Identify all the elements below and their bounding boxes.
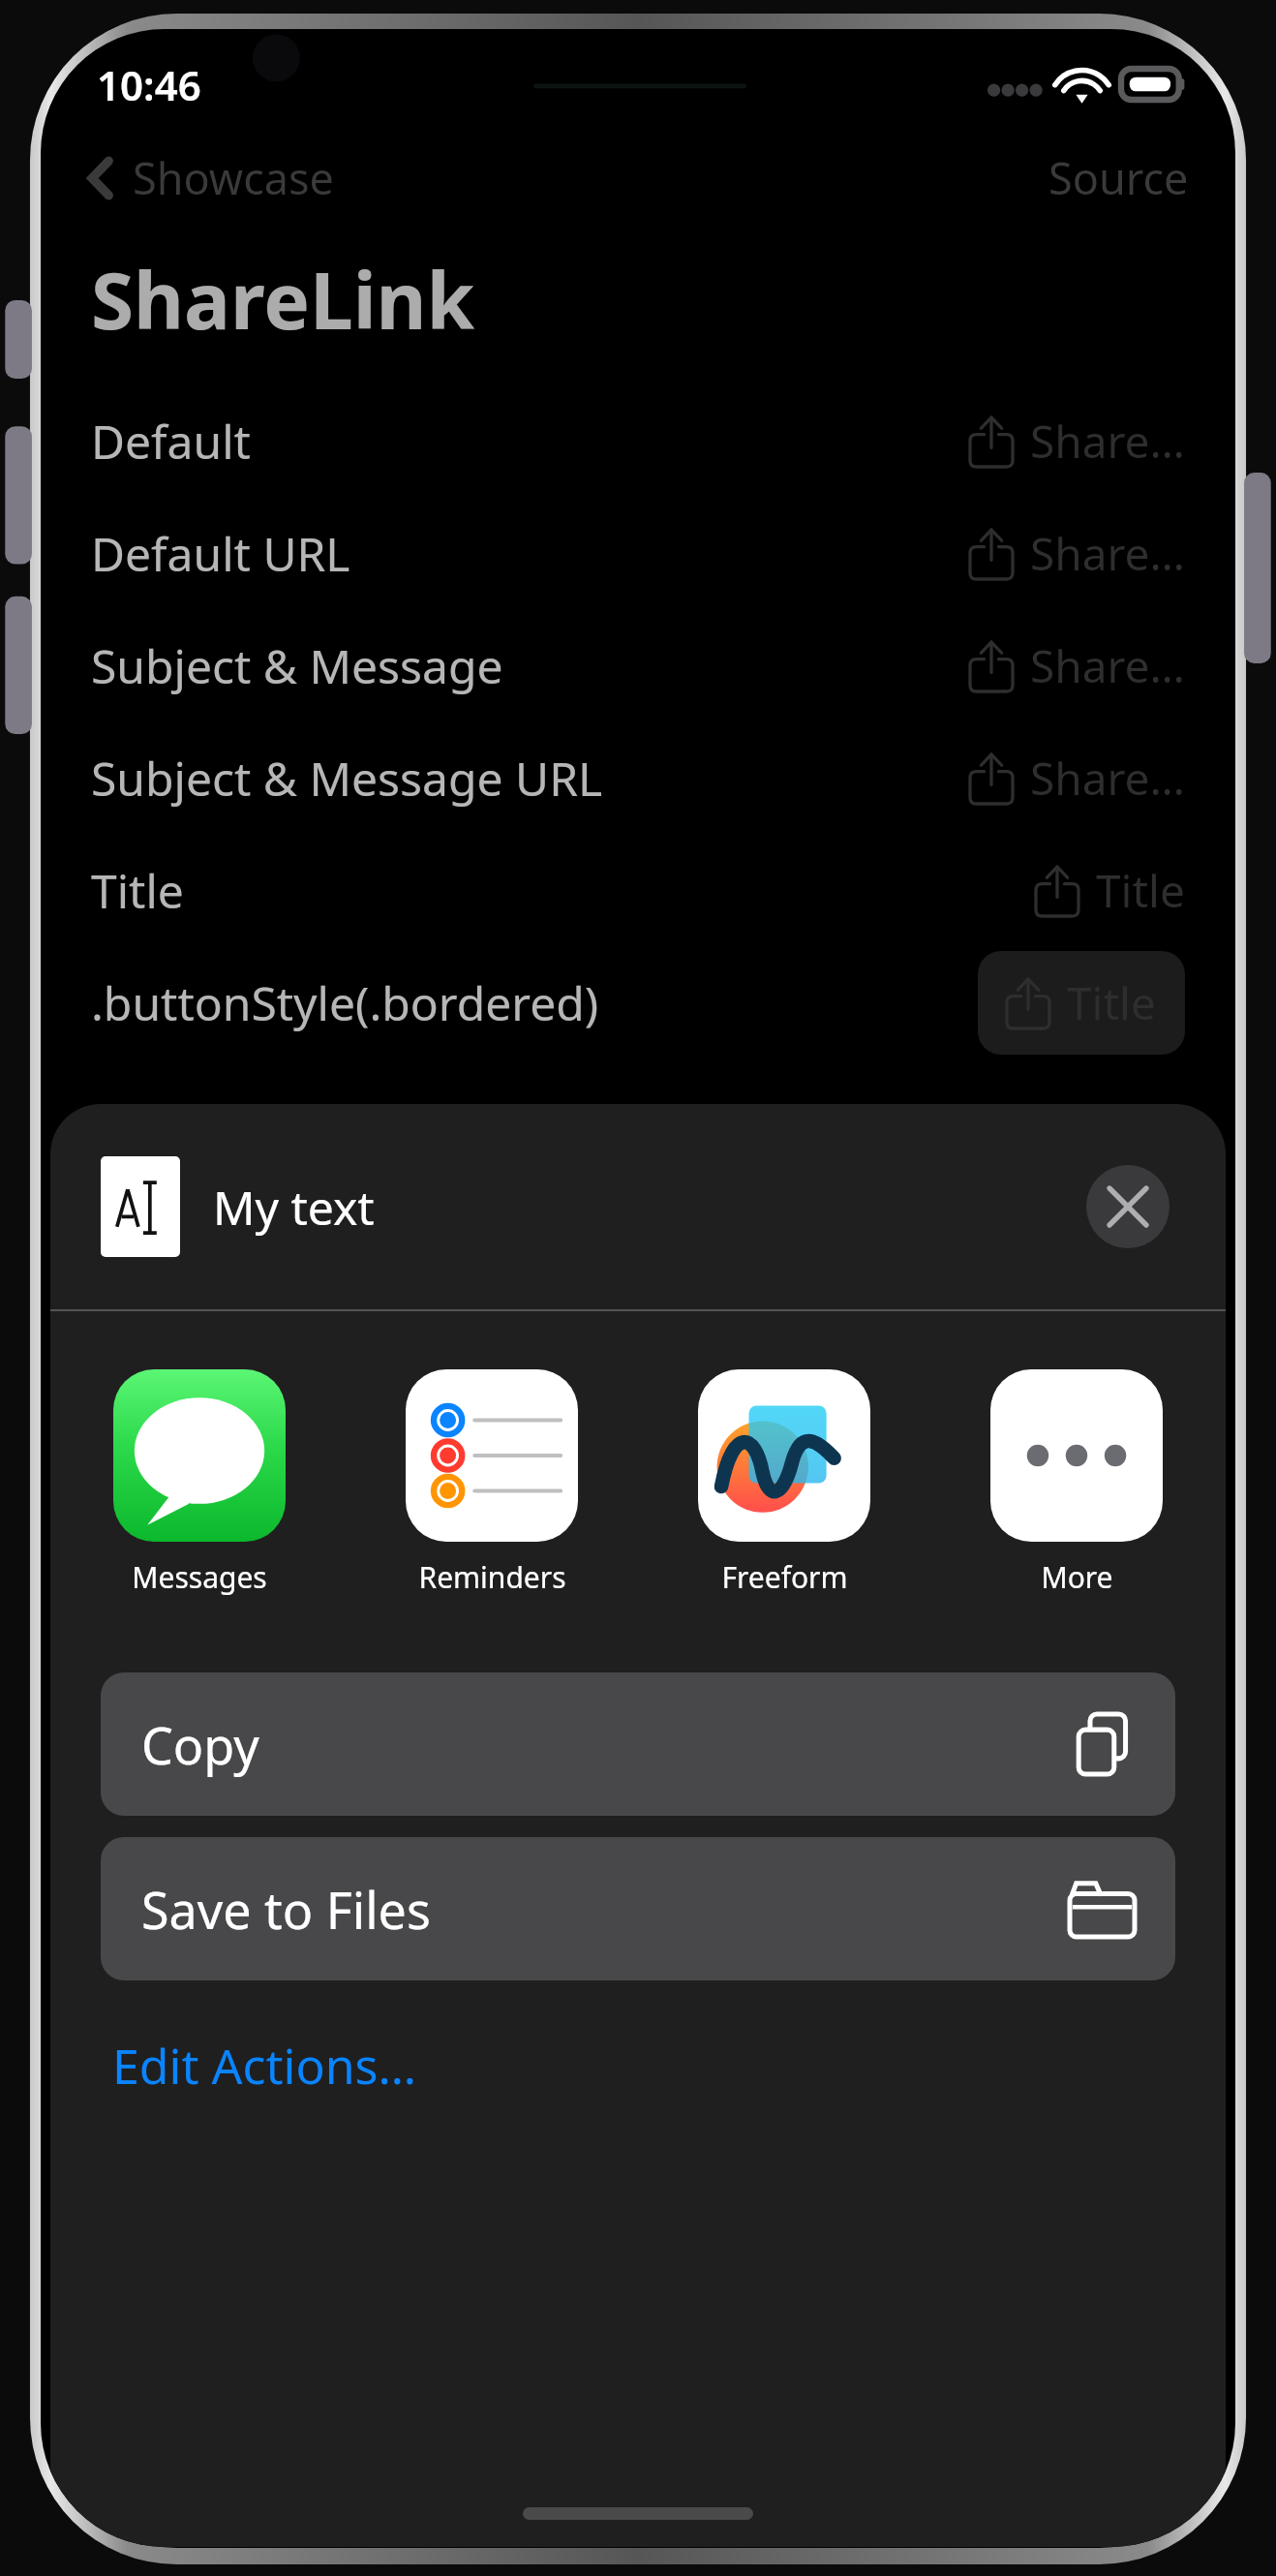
staticText: Subject & Message bbox=[91, 634, 503, 697]
button[interactable]: .buttonStyle(.bordered) bbox=[41, 946, 1235, 1058]
staticText: .buttonStyle(.bordered) bbox=[91, 971, 599, 1034]
staticText: More bbox=[1041, 1557, 1113, 1597]
staticText: Messages bbox=[132, 1557, 267, 1597]
staticText: Share… bbox=[1030, 523, 1185, 584]
button[interactable]: Reminders bbox=[403, 1369, 581, 1597]
button[interactable]: Subject & Message bbox=[41, 609, 1235, 721]
staticText: Subject & Message URL bbox=[91, 747, 603, 810]
button[interactable]: Close bbox=[1086, 1165, 1170, 1248]
staticText: Title bbox=[1096, 860, 1185, 921]
button[interactable]: Edit Actions… bbox=[50, 2011, 456, 2120]
staticText: Reminders bbox=[418, 1557, 566, 1597]
button[interactable]: More bbox=[987, 1369, 1166, 1597]
staticText: Showcase bbox=[133, 148, 334, 207]
staticText: Save to Files bbox=[141, 1875, 431, 1944]
button[interactable]: Default bbox=[41, 384, 1235, 497]
staticText: Default bbox=[91, 410, 251, 473]
staticText: Default URL bbox=[91, 522, 350, 585]
button[interactable]: Source bbox=[1031, 140, 1235, 215]
button[interactable]: Subject & Message URL bbox=[41, 721, 1235, 834]
button[interactable]: Title bbox=[978, 951, 1185, 1055]
button[interactable]: Copy bbox=[101, 1672, 1175, 1816]
button[interactable]: Title bbox=[41, 834, 1235, 946]
staticText: Freeform bbox=[721, 1557, 848, 1597]
staticText: Title bbox=[1067, 972, 1156, 1033]
staticText: 10:46 bbox=[97, 57, 201, 112]
button[interactable]: Messages bbox=[110, 1369, 289, 1597]
button[interactable]: Default URL bbox=[41, 497, 1235, 609]
staticText: Share… bbox=[1030, 635, 1185, 696]
staticText: Title bbox=[91, 859, 184, 922]
button[interactable]: Freeform bbox=[695, 1369, 873, 1597]
staticText: ShareLink bbox=[91, 246, 475, 352]
staticText: Copy bbox=[141, 1710, 259, 1779]
staticText: Share… bbox=[1030, 748, 1185, 809]
staticText: Share… bbox=[1030, 411, 1185, 472]
staticText: My text bbox=[213, 1176, 375, 1239]
button[interactable]: Showcase bbox=[41, 140, 349, 215]
button[interactable]: Save to Files bbox=[101, 1837, 1175, 1980]
